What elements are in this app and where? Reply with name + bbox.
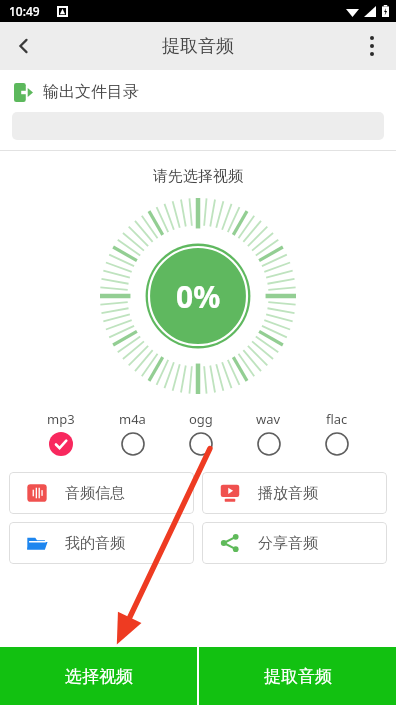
button[interactable]: 分享音频 [202,522,387,564]
button[interactable]: m4a [113,408,152,458]
staticText: mp3 [47,410,75,428]
staticText: ogg [189,410,213,428]
button[interactable]: ogg [183,408,219,458]
staticText: 0% [176,276,221,317]
staticText: 播放音频 [258,484,318,503]
staticText: 提取音频 [264,666,332,687]
staticText: 提取音频 [162,35,234,58]
button[interactable]: 选择视频 [0,647,197,705]
button[interactable]: flac [319,408,355,458]
button[interactable]: mp3 [41,408,81,458]
staticText: 输出文件目录 [43,82,139,102]
button[interactable]: 音频信息 [9,472,194,514]
button[interactable]: More options [348,22,396,70]
button[interactable]: 提取音频 [199,647,396,705]
staticText: 分享音频 [258,534,318,553]
staticText: 选择视频 [65,666,133,687]
button[interactable]: wav [250,408,287,458]
button[interactable]: Back [0,22,48,70]
button[interactable]: 我的音频 [9,522,194,564]
staticText: flac [326,410,348,428]
button[interactable]: 输出文件目录 [14,82,396,102]
staticText: 我的音频 [65,534,125,553]
staticText: 请先选择视频 [0,167,396,186]
button[interactable]: 播放音频 [202,472,387,514]
staticText: m4a [119,410,146,428]
staticText: wav [256,410,281,428]
staticText: 10:49 [9,3,40,19]
staticText: 音频信息 [65,484,125,503]
